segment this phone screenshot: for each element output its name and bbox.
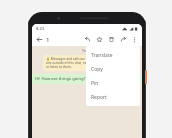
staticText: Translate: [91, 52, 113, 59]
button[interactable]: Star: [95, 35, 104, 44]
button[interactable]: Translate: [86, 48, 140, 62]
button[interactable]: More options: [130, 35, 139, 44]
staticText: Report: [91, 94, 107, 101]
button[interactable]: Reply: [83, 35, 92, 44]
staticText: Hi! How are things going?: [35, 76, 86, 82]
button[interactable]: Forward: [119, 35, 128, 44]
button[interactable]: Copy: [86, 62, 140, 76]
staticText: 🔒 Messages and calls are end-to-end encr…: [46, 57, 128, 69]
button[interactable]: Back: [35, 35, 44, 44]
staticText: Today: [82, 48, 92, 53]
button[interactable]: Hi! How are things going?: [32, 74, 142, 84]
button[interactable]: Pin: [86, 76, 140, 90]
button[interactable]: Delete: [107, 35, 116, 44]
staticText: 8:23: [36, 26, 44, 31]
staticText: Copy: [91, 66, 103, 73]
button[interactable]: Report: [86, 90, 140, 104]
staticText: 1: [46, 36, 50, 44]
staticText: Pin: [91, 80, 99, 87]
